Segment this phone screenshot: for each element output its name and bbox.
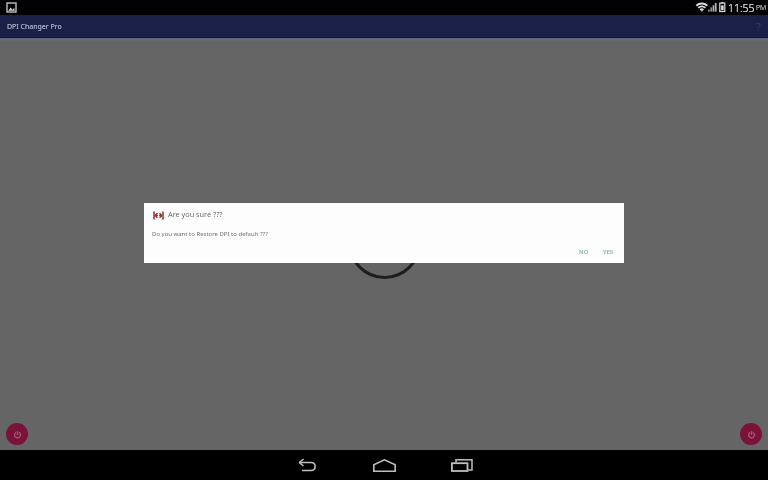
button[interactable]: Recents — [428, 450, 496, 480]
button[interactable]: Help — [748, 15, 768, 38]
staticText: Are you sure ??? — [168, 209, 223, 219]
staticText: Do you want to Restore DPI to default ??… — [152, 230, 268, 238]
button[interactable]: Back — [272, 450, 340, 480]
button[interactable]: Apply DPI — [740, 423, 762, 445]
staticText: PM — [756, 3, 767, 13]
button[interactable]: YES — [596, 244, 620, 260]
staticText: ? — [756, 19, 761, 34]
staticText: NO — [579, 248, 589, 256]
staticText: 11:55 — [728, 1, 755, 15]
staticText: YES — [603, 248, 614, 256]
staticText: DPI Changer Pro — [7, 22, 62, 32]
button[interactable]: Reset DPI — [6, 423, 28, 445]
button[interactable]: NO — [572, 244, 596, 260]
button[interactable]: Home — [350, 450, 418, 480]
